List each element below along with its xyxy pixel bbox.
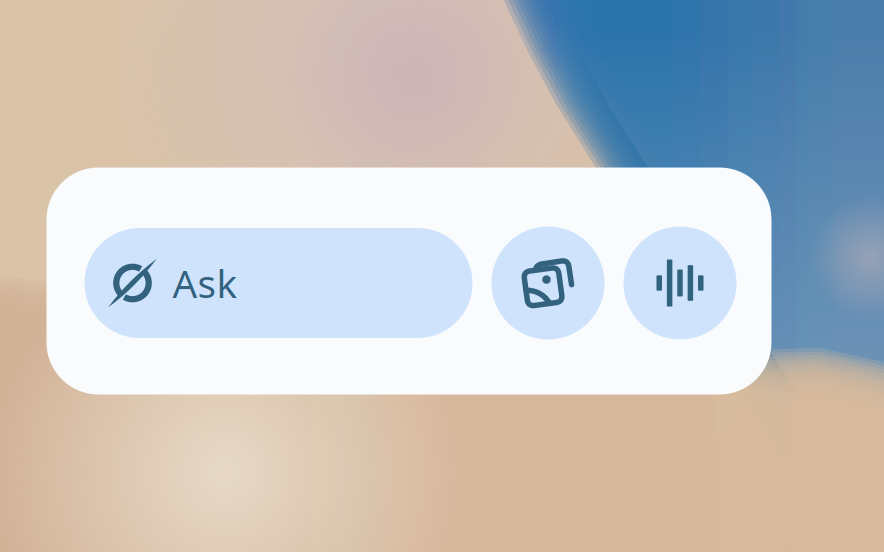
button[interactable]: Voice mode (623, 226, 736, 339)
button[interactable]: Add photo (491, 226, 604, 339)
button[interactable]: Ask (84, 228, 472, 338)
staticText: Ask (172, 257, 237, 309)
